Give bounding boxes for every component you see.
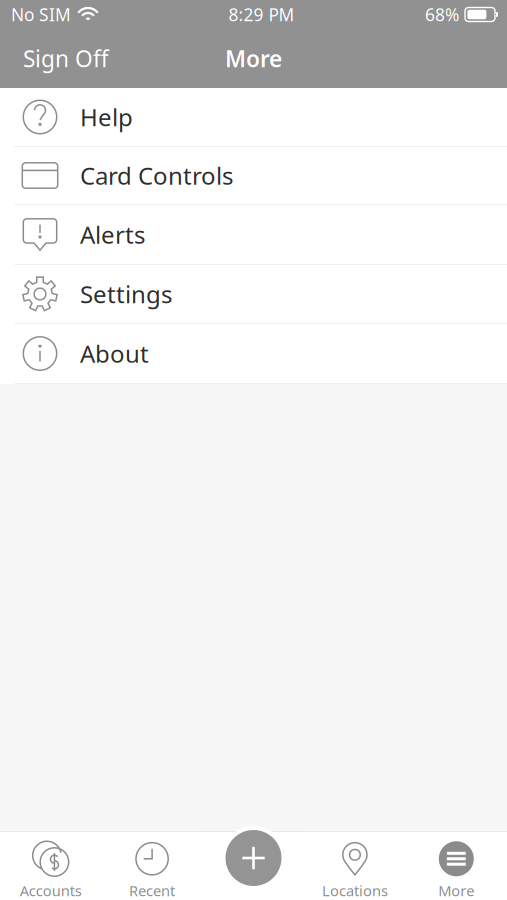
button[interactable]: Sign Off: [0, 29, 132, 88]
staticText: More: [225, 43, 282, 73]
staticText: Recent: [129, 881, 175, 900]
button[interactable]: More: [406, 832, 507, 900]
staticText: Sign Off: [23, 43, 109, 73]
staticText: Help: [80, 101, 133, 133]
staticText: Locations: [322, 881, 388, 900]
staticText: About: [80, 338, 149, 369]
staticText: 68%: [425, 3, 459, 26]
button[interactable]: About: [0, 324, 507, 384]
staticText: More: [438, 881, 474, 900]
staticText: Settings: [80, 278, 172, 310]
staticText: Alerts: [80, 219, 145, 250]
button[interactable]: Recent: [101, 832, 203, 900]
button[interactable]: Help: [0, 88, 507, 147]
button[interactable]: Alerts: [0, 205, 507, 265]
staticText: No SIM: [11, 3, 71, 26]
button[interactable]: Accounts: [0, 832, 101, 900]
button[interactable]: Settings: [0, 265, 507, 324]
button[interactable]: Card Controls: [0, 147, 507, 205]
staticText: 8:29 PM: [228, 3, 294, 26]
staticText: Card Controls: [80, 160, 233, 191]
staticText: Accounts: [20, 881, 82, 900]
button[interactable]: Locations: [304, 832, 406, 900]
button[interactable]: Add: [221, 804, 285, 890]
